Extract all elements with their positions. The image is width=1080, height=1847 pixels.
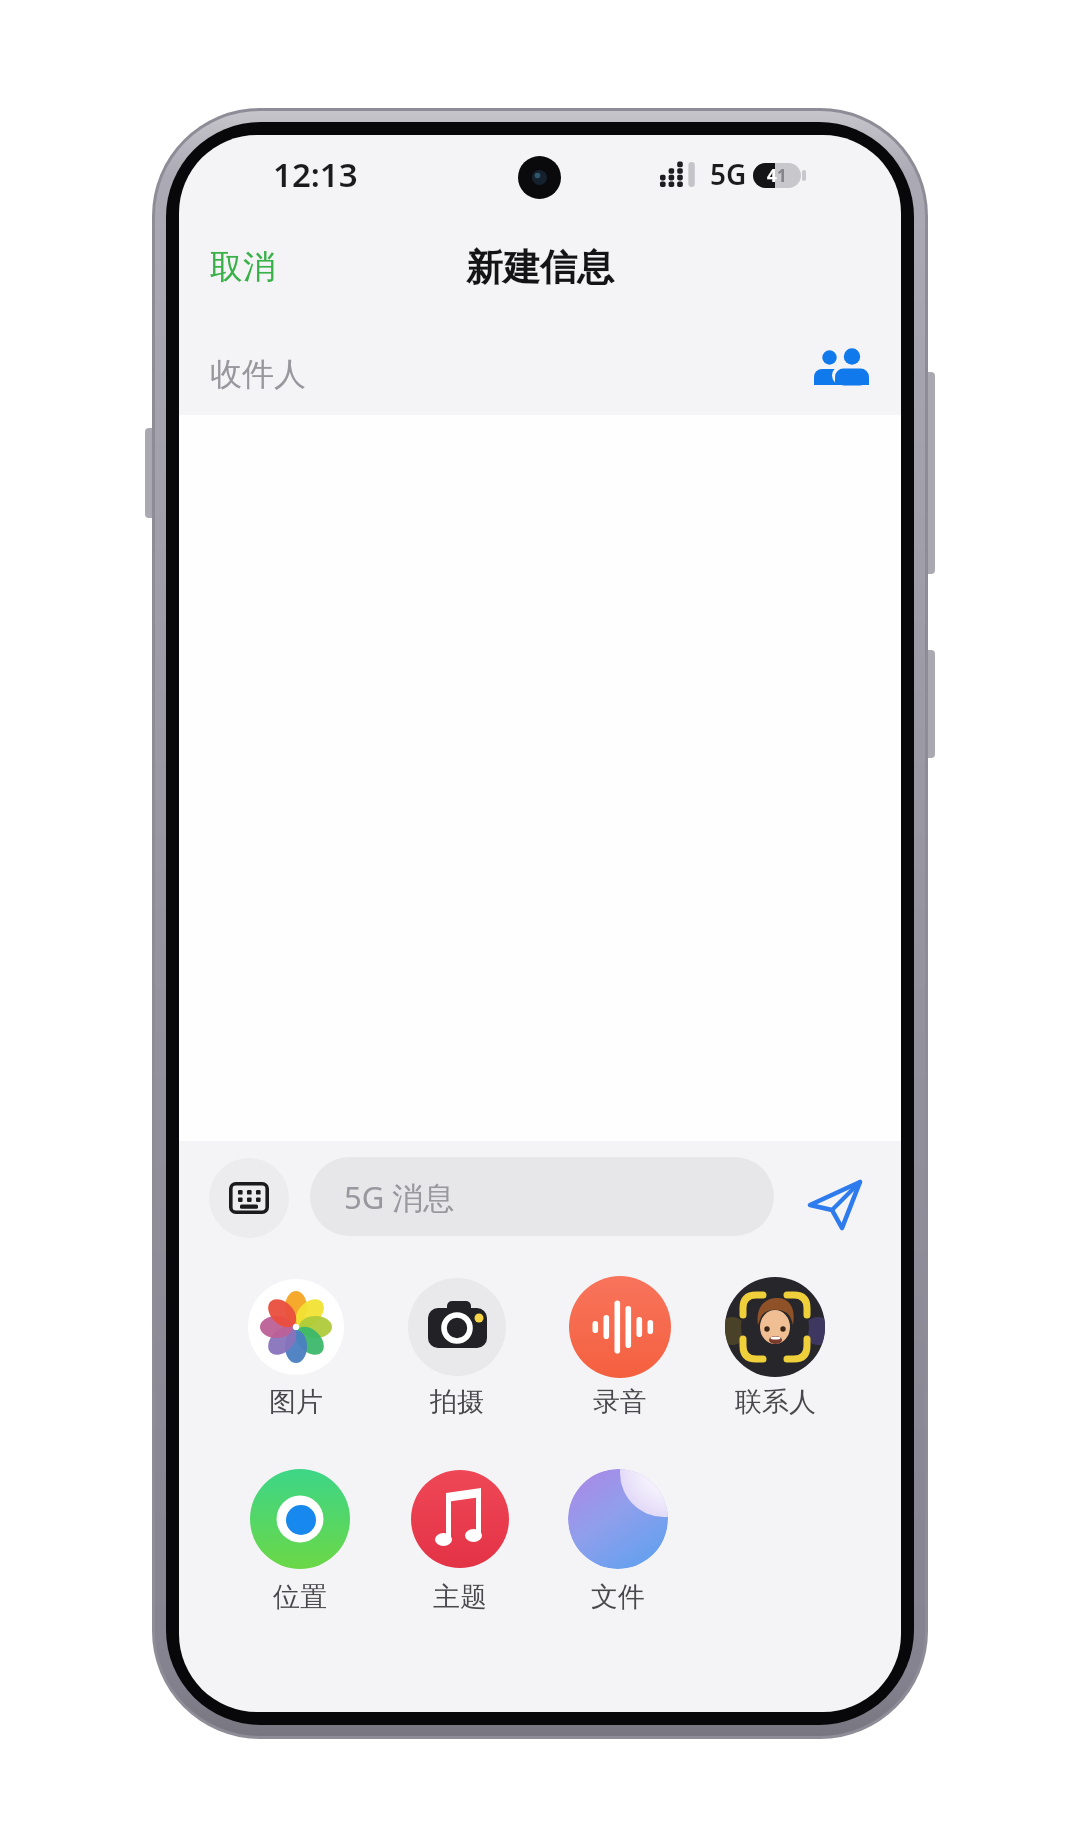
button[interactable]: 拍摄 [367,1379,547,1425]
button[interactable] [250,1469,350,1569]
staticText: 联系人 [735,1385,816,1419]
staticText: 1 [777,164,787,187]
button[interactable]: 收件人 [179,339,901,409]
button[interactable] [725,1277,825,1377]
button[interactable] [812,346,870,387]
staticText: 12:13 [273,152,358,197]
staticText: 文件 [591,1580,645,1614]
staticText: 4 [767,164,777,187]
staticText: 5G [710,155,747,193]
staticText: 收件人 [210,354,306,394]
staticText: 拍摄 [430,1385,484,1419]
button[interactable]: 主题 [370,1574,550,1620]
button[interactable] [799,1169,871,1241]
button[interactable] [248,1279,344,1375]
staticText: 位置 [273,1580,327,1614]
button[interactable] [209,1158,289,1238]
button[interactable] [569,1276,671,1378]
button[interactable]: 联系人 [685,1379,865,1425]
staticText: 主题 [433,1580,487,1614]
button[interactable]: 取消 [210,239,340,295]
staticText: 图片 [269,1385,323,1419]
button[interactable]: 图片 [206,1379,386,1425]
button[interactable]: 录音 [530,1379,710,1425]
button[interactable] [408,1278,506,1376]
button[interactable] [568,1469,668,1569]
button[interactable]: 文件 [528,1574,708,1620]
staticText: 取消 [210,246,276,288]
staticText: 新建信息 [466,244,614,291]
button[interactable]: 5G 消息 [310,1157,774,1236]
button[interactable]: 位置 [210,1574,390,1620]
staticText: 5G 消息 [344,1176,455,1218]
staticText: 录音 [593,1385,647,1419]
button[interactable] [411,1470,509,1568]
